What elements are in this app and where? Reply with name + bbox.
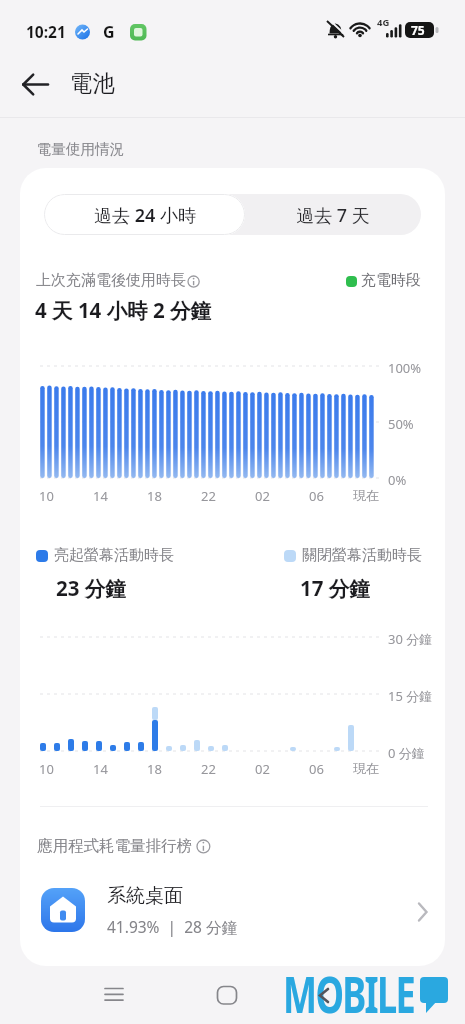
staticText: 100%: [388, 359, 422, 377]
staticText: 17 分鐘: [300, 574, 370, 602]
staticText: 系統桌面: [107, 884, 183, 908]
button[interactable]: [20, 870, 445, 950]
staticText: 22: [201, 487, 216, 505]
staticText: 18: [147, 487, 162, 505]
staticText: 關閉螢幕活動時長: [302, 546, 422, 565]
staticText: 10:21: [26, 21, 66, 42]
button[interactable]: [44, 194, 245, 235]
staticText: 現在: [353, 487, 379, 503]
staticText: 現在: [353, 760, 379, 776]
staticText: 06: [309, 487, 324, 505]
button[interactable]: [211, 980, 243, 1012]
staticText: 10: [39, 487, 54, 505]
staticText: 30 分鐘: [388, 630, 433, 648]
staticText: 0 分鐘: [388, 744, 425, 762]
staticText: 10: [39, 760, 54, 778]
staticText: 02: [255, 760, 270, 778]
staticText: 02: [255, 487, 270, 505]
staticText: MOBILE: [283, 959, 415, 1024]
staticText: 4G: [377, 16, 390, 29]
staticText: 15 分鐘: [388, 687, 433, 705]
staticText: 14: [93, 487, 108, 505]
button[interactable]: [18, 70, 54, 99]
staticText: 18: [147, 760, 162, 778]
staticText: 應用程式耗電量排行榜: [37, 836, 192, 856]
staticText: 23 分鐘: [56, 574, 126, 602]
staticText: 電池: [70, 69, 115, 97]
button[interactable]: [245, 194, 421, 235]
staticText: 亮起螢幕活動時長: [54, 546, 174, 565]
staticText: 14: [93, 760, 108, 778]
staticText: 06: [309, 760, 324, 778]
staticText: G: [103, 21, 115, 43]
button[interactable]: [98, 980, 130, 1012]
staticText: 電量使用情況: [37, 140, 124, 158]
staticText: 50%: [388, 415, 414, 433]
staticText: 上次充滿電後使用時長: [36, 271, 186, 290]
staticText: 過去 24 小時: [94, 203, 196, 228]
staticText: 0%: [388, 471, 407, 489]
staticText: 41.93% | 28 分鐘: [107, 916, 237, 937]
staticText: 75: [411, 22, 425, 38]
button[interactable]: MOBILE: [283, 959, 465, 1024]
staticText: 過去 7 天: [296, 203, 370, 228]
staticText: 22: [201, 760, 216, 778]
staticText: 充電時段: [361, 271, 421, 290]
staticText: 4 天 14 小時 2 分鐘: [35, 296, 212, 324]
